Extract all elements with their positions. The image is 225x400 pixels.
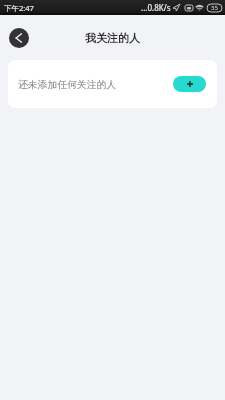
staticText: 35 xyxy=(211,4,218,12)
button[interactable]: Back xyxy=(9,28,29,48)
button[interactable]: Add person xyxy=(173,76,206,92)
staticText: 我关注的人 xyxy=(85,31,140,45)
staticText: 下午2:47 xyxy=(4,3,34,13)
staticText: ...0.8K/s xyxy=(141,2,171,13)
staticText: 还未添加任何关注的人 xyxy=(18,79,116,91)
